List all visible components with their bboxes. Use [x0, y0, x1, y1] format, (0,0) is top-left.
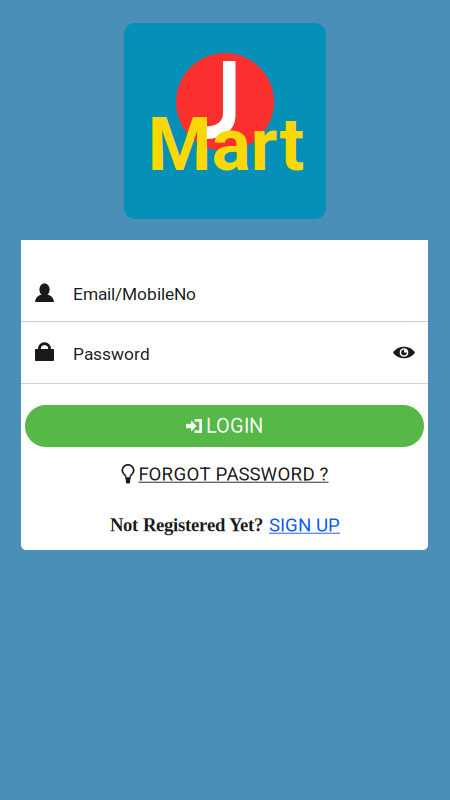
button[interactable]: Email/MobileNo	[21, 240, 428, 321]
button[interactable]: LOGIN	[25, 405, 424, 447]
staticText: SIGN UP	[269, 514, 340, 536]
button[interactable]: Show password	[383, 322, 425, 383]
staticText: FORGOT PASSWORD ?	[138, 463, 328, 485]
staticText: Email/MobileNo	[73, 284, 196, 304]
button[interactable]: SIGN UP	[269, 514, 340, 536]
staticText: LOGIN	[206, 414, 263, 438]
staticText: Not Registered Yet?	[110, 515, 263, 535]
button[interactable]: Password	[21, 322, 428, 383]
staticText: Mart	[147, 102, 304, 188]
button[interactable]: FORGOT PASSWORD ?	[0, 462, 450, 486]
staticText: Password	[73, 344, 150, 364]
